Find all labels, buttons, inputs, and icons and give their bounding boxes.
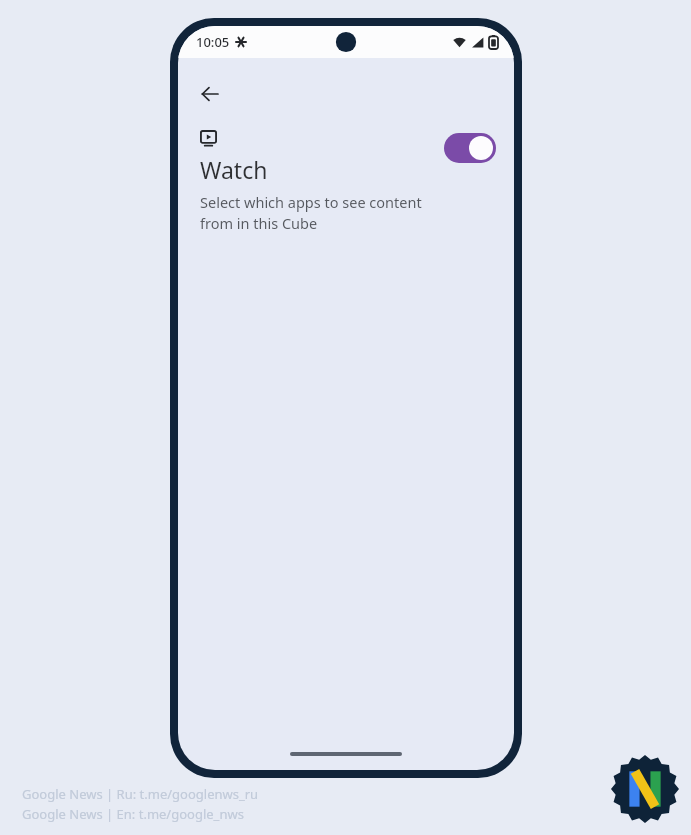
staticText: 10:05 xyxy=(196,33,230,51)
staticText: Google News | En: t.me/google_nws xyxy=(22,805,244,823)
staticText: Watch xyxy=(200,154,268,185)
staticText: Select which apps to see content from in… xyxy=(200,192,438,234)
button[interactable]: Watch toggle, on xyxy=(444,133,496,163)
staticText: Google News | Ru: t.me/googlenws_ru xyxy=(22,785,259,803)
button[interactable]: Google News badge xyxy=(611,755,679,823)
button[interactable]: Back xyxy=(188,72,232,116)
